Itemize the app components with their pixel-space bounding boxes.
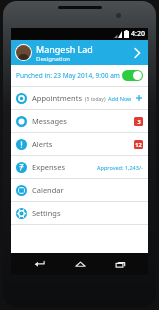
staticText: 4:20 [131,29,145,39]
staticText: Designation [36,55,71,63]
button[interactable]: Expenses [11,156,148,178]
staticText: Appointments [32,93,83,103]
button[interactable]: Back [27,253,51,275]
button[interactable]: Alerts [11,133,148,155]
staticText: Messages [32,116,67,126]
staticText: Punched in: 23 May 2014, 9:00 am [16,71,122,80]
button[interactable]: Add Now [108,94,143,102]
staticText: 3 [137,118,141,125]
staticText: Expenses [32,162,66,172]
staticText: (5 today) [85,96,106,103]
staticText: Add Now [108,95,132,102]
button[interactable]: Messages [11,110,148,132]
staticText: Mangesh Lad [36,43,93,55]
button[interactable]: Settings [11,202,148,224]
staticText: Calendar [32,185,64,195]
staticText: Approved: 1,243/- [97,164,143,171]
button[interactable]: Home [68,253,92,275]
button[interactable]: Recents [108,253,132,275]
button[interactable]: Mangesh Lad [11,40,148,65]
staticText: 12 [135,141,142,148]
staticText: Settings [32,208,61,218]
button[interactable]: Punched in: 23 May 2014, 9:00 am [11,65,148,86]
staticText: Alerts [32,139,53,149]
button[interactable]: Calendar [11,179,148,201]
button[interactable]: Appointments [11,87,148,109]
